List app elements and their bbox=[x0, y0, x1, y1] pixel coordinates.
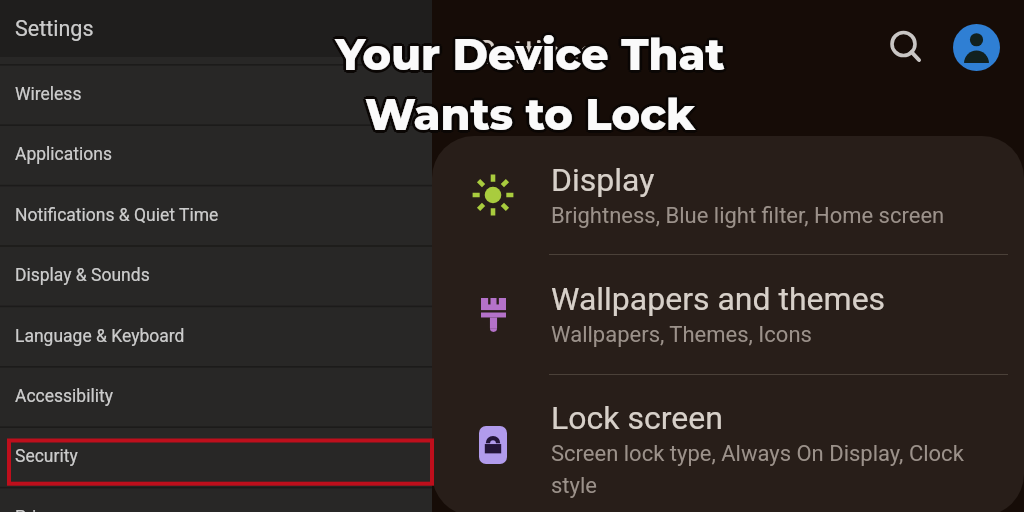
button[interactable]: Security bbox=[0, 427, 432, 487]
staticText: Your Device That Wants to Lock bbox=[100, 31, 960, 143]
button[interactable]: Notifications & Quiet Time bbox=[0, 186, 432, 246]
staticText: Your Device That Wants to Lock bbox=[102, 26, 962, 138]
button[interactable]: Privacy bbox=[0, 488, 432, 512]
staticText: Your Device That Wants to Lock bbox=[98, 30, 958, 142]
staticText: Privacy bbox=[15, 507, 72, 512]
staticText: Notifications & Quiet Time bbox=[15, 205, 219, 226]
staticText: Accessibility bbox=[15, 386, 113, 407]
button[interactable]: Applications bbox=[0, 125, 432, 185]
staticText: Security bbox=[15, 446, 78, 467]
button[interactable]: Wallpapers and themes bbox=[432, 254, 1024, 374]
staticText: Language & Keyboard bbox=[15, 326, 185, 347]
staticText: Settings bbox=[476, 33, 597, 72]
staticText: Screen lock type, Always On Display, Clo… bbox=[551, 441, 973, 499]
staticText: Settings bbox=[15, 16, 94, 41]
staticText: Your Device That Wants to Lock bbox=[98, 26, 958, 138]
staticText: Display bbox=[551, 161, 655, 199]
button[interactable]: Language & Keyboard bbox=[0, 307, 432, 367]
staticText: Wallpapers and themes bbox=[551, 280, 886, 318]
staticText: Display & Sounds bbox=[15, 265, 150, 286]
staticText: Wireless bbox=[15, 84, 82, 105]
staticText: Your Device That Wants to Lock bbox=[100, 28, 960, 140]
staticText: Brightness, Blue light filter, Home scre… bbox=[551, 203, 945, 229]
button[interactable]: Account bbox=[953, 24, 1000, 71]
staticText: Your Device That Wants to Lock bbox=[102, 30, 962, 142]
staticText: Your Device That Wants to Lock bbox=[100, 25, 960, 137]
button[interactable]: Accessibility bbox=[0, 367, 432, 427]
staticText: Applications bbox=[15, 144, 112, 165]
button[interactable]: Display bbox=[432, 136, 1024, 254]
staticText: Your Device That Wants to Lock bbox=[97, 28, 957, 140]
button[interactable]: Display & Sounds bbox=[0, 246, 432, 306]
staticText: Lock screen bbox=[551, 399, 723, 437]
button[interactable]: Lock screen bbox=[432, 374, 1024, 512]
button[interactable]: Settings bbox=[0, 0, 432, 57]
staticText: Wallpapers, Themes, Icons bbox=[551, 322, 812, 348]
staticText: Your Device That Wants to Lock bbox=[103, 28, 963, 140]
button[interactable]: Search bbox=[882, 23, 930, 71]
button[interactable]: Wireless bbox=[0, 65, 432, 125]
